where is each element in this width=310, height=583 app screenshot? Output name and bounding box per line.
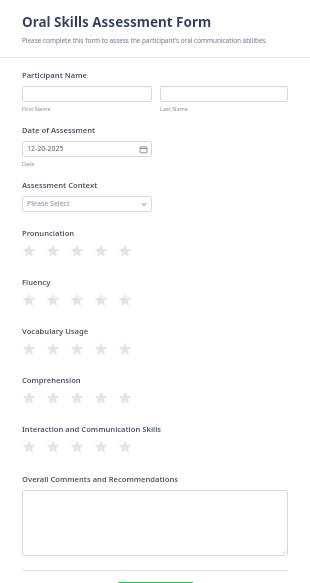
staticText: Please complete this form to assess the … xyxy=(22,36,268,45)
button[interactable]: Rate 4 stars xyxy=(94,389,118,407)
button[interactable]: Rate 3 stars xyxy=(70,340,94,358)
button[interactable]: Rate 5 stars xyxy=(118,242,142,260)
staticText: First Name xyxy=(22,105,51,113)
staticText: Overall Comments and Recommendations xyxy=(22,474,179,484)
button[interactable]: Rate 5 stars xyxy=(118,291,142,309)
button[interactable] xyxy=(22,86,152,102)
staticText: Comprehension xyxy=(22,375,81,385)
staticText: Last Name xyxy=(160,105,188,113)
button[interactable]: Rate 1 stars xyxy=(22,242,46,260)
staticText: Fluency xyxy=(22,277,51,287)
button[interactable]: Rate 1 stars xyxy=(22,438,46,456)
button[interactable]: Rate 5 stars xyxy=(118,438,142,456)
button[interactable]: Rate 1 stars xyxy=(22,340,46,358)
button[interactable]: Overall comments xyxy=(22,490,288,556)
other: Pick date xyxy=(139,145,147,153)
button[interactable]: Rate 3 stars xyxy=(70,438,94,456)
staticText: 12-20-2025 xyxy=(27,144,64,154)
button[interactable]: Rate 2 stars xyxy=(46,242,70,260)
button[interactable] xyxy=(160,86,288,102)
staticText: Assessment Context xyxy=(22,180,98,190)
staticText: Oral Skills Assessment Form xyxy=(22,13,212,31)
button[interactable]: Rate 1 stars xyxy=(22,389,46,407)
button[interactable]: Rate 1 stars xyxy=(22,291,46,309)
staticText: Participant Name xyxy=(22,70,87,80)
staticText: Date xyxy=(22,160,35,168)
button[interactable]: Rate 5 stars xyxy=(118,389,142,407)
button[interactable]: Rate 3 stars xyxy=(70,291,94,309)
button[interactable]: Rate 3 stars xyxy=(70,389,94,407)
button[interactable]: Rate 2 stars xyxy=(46,340,70,358)
button[interactable]: Rate 4 stars xyxy=(94,291,118,309)
button[interactable]: 12-20-2025 xyxy=(22,141,152,157)
button[interactable]: Rate 2 stars xyxy=(46,291,70,309)
button[interactable]: Rate 4 stars xyxy=(94,438,118,456)
button[interactable]: Rate 2 stars xyxy=(46,389,70,407)
staticText: Interaction and Communication Skills xyxy=(22,424,162,434)
staticText: Please Select xyxy=(27,199,70,209)
staticText: Pronunciation xyxy=(22,228,75,238)
button[interactable]: Rate 4 stars xyxy=(94,242,118,260)
staticText: Vocabulary Usage xyxy=(22,326,89,336)
button[interactable]: Rate 2 stars xyxy=(46,438,70,456)
button[interactable]: Rate 5 stars xyxy=(118,340,142,358)
button[interactable]: Rate 4 stars xyxy=(94,340,118,358)
button[interactable]: Please Select xyxy=(22,196,152,212)
staticText: Date of Assessment xyxy=(22,125,96,135)
button[interactable]: Rate 3 stars xyxy=(70,242,94,260)
button[interactable]: Submit Assessment xyxy=(118,582,193,583)
